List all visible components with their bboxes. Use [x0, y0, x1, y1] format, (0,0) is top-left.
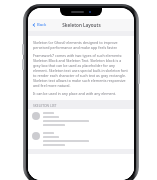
button[interactable]: Back — [31, 21, 48, 29]
staticText: Skeleton Layouts — [62, 22, 101, 28]
staticText: Back — [37, 22, 47, 28]
staticText: Skeleton (or Ghost) elements designed to… — [33, 40, 129, 50]
button[interactable] — [28, 109, 134, 129]
staticText: It can be used in any place and with any… — [33, 91, 116, 96]
button[interactable] — [28, 129, 134, 149]
staticText: Framework7 comes with two types of such … — [33, 53, 129, 88]
staticText: SKELETON LIST — [33, 103, 57, 107]
